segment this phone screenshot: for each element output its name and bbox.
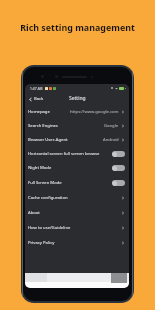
staticText: Android — [103, 137, 119, 143]
staticText: Cache configuration — [28, 195, 68, 201]
staticText: How to use/Guideline — [28, 225, 71, 231]
button[interactable]: Privacy Policy — [25, 235, 129, 250]
staticText: Rich setting management — [20, 21, 135, 33]
staticText: Browser User-Agent — [28, 137, 68, 143]
button[interactable]: Night Mode — [25, 161, 129, 175]
staticText: Full Screen Mode — [28, 180, 62, 186]
staticText: Privacy Policy — [28, 240, 55, 246]
button[interactable]: Cache configuration — [25, 190, 129, 205]
button[interactable]: Full Screen Mode — [25, 175, 129, 190]
button[interactable]: Back — [25, 94, 47, 104]
staticText: Setting — [69, 95, 86, 102]
staticText: Horizontal screen full screen browse — [28, 151, 100, 157]
button[interactable]: Search Engines — [25, 119, 129, 133]
button[interactable]: How to use/Guideline — [25, 220, 129, 235]
staticText: 1:47 AM — [30, 86, 43, 90]
staticText: https://www.google.com — [70, 109, 119, 115]
button[interactable]: About — [25, 205, 129, 220]
staticText: Back — [34, 96, 44, 102]
staticText: About — [28, 210, 40, 216]
button[interactable]: Horizontal screen full screen browse — [25, 147, 129, 161]
staticText: Night Mode — [28, 165, 52, 171]
button[interactable]: Homepage — [25, 105, 129, 119]
staticText: Search Engines — [28, 123, 58, 129]
staticText: Homepage — [28, 109, 50, 115]
staticText: Google — [104, 123, 119, 129]
button[interactable]: Browser User-Agent — [25, 133, 129, 147]
